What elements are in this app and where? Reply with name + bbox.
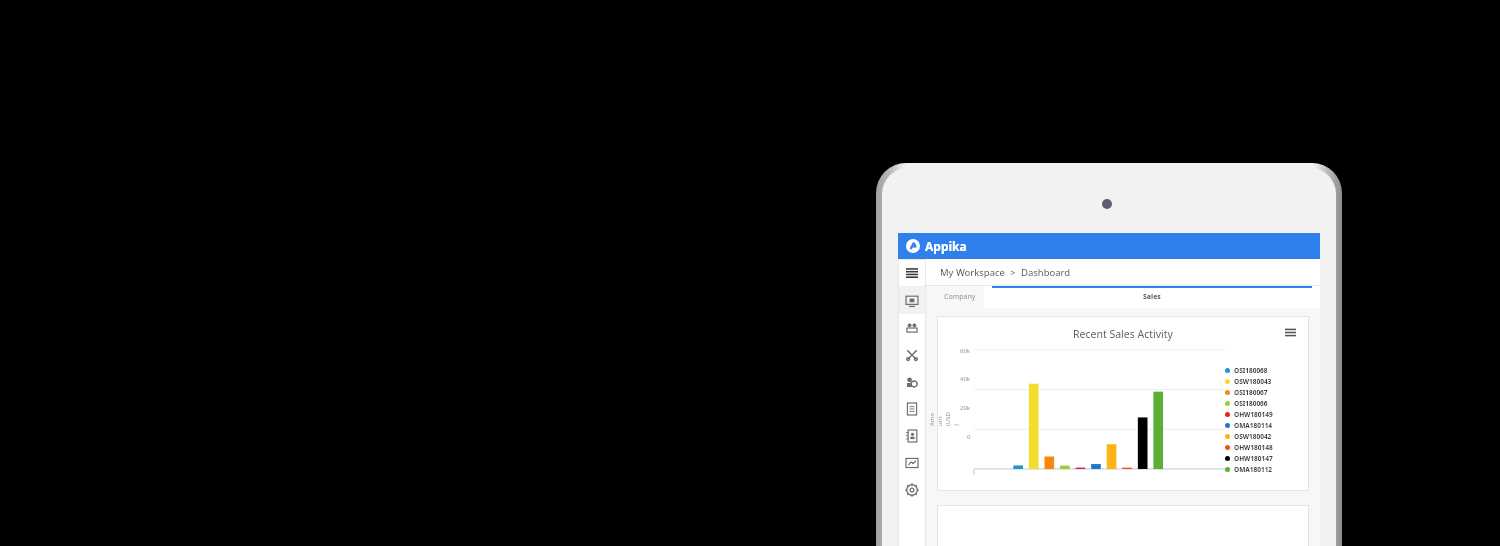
staticText: OSI180068 bbox=[1234, 366, 1268, 375]
button[interactable]: OSI180068 bbox=[1225, 365, 1305, 376]
button[interactable]: Customers bbox=[898, 314, 926, 341]
staticText: Amount (USD) bbox=[928, 412, 960, 426]
button[interactable]: OMA180114 bbox=[1225, 420, 1305, 431]
staticText: My Workspace bbox=[940, 266, 1005, 279]
button[interactable]: OHW180147 bbox=[1225, 453, 1305, 464]
button[interactable]: Contacts bbox=[898, 422, 926, 449]
button[interactable]: Chart menu bbox=[1284, 326, 1297, 339]
staticText: Appika bbox=[925, 238, 967, 254]
button[interactable]: OSW180043 bbox=[1225, 376, 1305, 387]
button[interactable]: OHW180148 bbox=[1225, 442, 1305, 453]
button[interactable]: Service bbox=[898, 368, 926, 395]
staticText: OSW180043 bbox=[1234, 377, 1272, 386]
button[interactable]: Company bbox=[936, 286, 984, 308]
button[interactable]: OSW180042 bbox=[1225, 431, 1305, 442]
staticText: Dashboard bbox=[1021, 266, 1071, 279]
button[interactable] bbox=[937, 505, 1309, 546]
staticText: OSI180067 bbox=[1234, 388, 1268, 397]
staticText: OHW180148 bbox=[1234, 443, 1273, 452]
button[interactable]: Settings bbox=[898, 476, 926, 503]
button[interactable]: Reports bbox=[898, 449, 926, 476]
button[interactable]: Dashboard bbox=[898, 287, 926, 314]
button[interactable]: OHW180149 bbox=[1225, 409, 1305, 420]
button[interactable] bbox=[906, 239, 920, 253]
staticText: 40k bbox=[960, 375, 971, 383]
staticText: Company bbox=[944, 292, 976, 302]
staticText: 20k bbox=[960, 404, 971, 412]
button[interactable]: OSI180066 bbox=[1225, 398, 1305, 409]
staticText: OHW180147 bbox=[1234, 454, 1273, 463]
button[interactable]: Menu bbox=[898, 259, 926, 286]
staticText: > bbox=[1010, 266, 1016, 279]
staticText: OMA180114 bbox=[1234, 421, 1273, 430]
staticText: OSI180066 bbox=[1234, 399, 1268, 408]
staticText: OSW180042 bbox=[1234, 432, 1272, 441]
staticText: Sales bbox=[1143, 292, 1161, 302]
button[interactable]: OSI180067 bbox=[1225, 387, 1305, 398]
staticText: OHW180149 bbox=[1234, 410, 1273, 419]
staticText: OMA180112 bbox=[1234, 465, 1273, 474]
button[interactable]: My Workspace bbox=[940, 266, 1005, 279]
button[interactable]: OMA180112 bbox=[1225, 464, 1305, 475]
staticText: 0 bbox=[967, 433, 971, 441]
button[interactable]: Sales bbox=[984, 286, 1320, 308]
button[interactable]: Tools bbox=[898, 341, 926, 368]
button[interactable]: Orders bbox=[898, 395, 926, 422]
staticText: Recent Sales Activity bbox=[1073, 327, 1173, 341]
button[interactable]: Recent Sales Activity bbox=[937, 316, 1309, 491]
staticText: 60k bbox=[960, 347, 971, 355]
